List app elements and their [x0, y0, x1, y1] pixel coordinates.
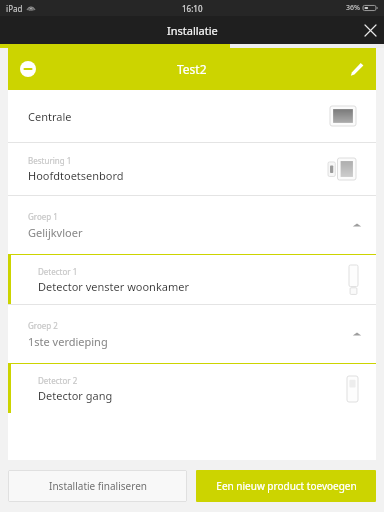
- staticText: iPad: [6, 3, 23, 14]
- button[interactable]: Close: [356, 16, 384, 44]
- button[interactable]: Besturing 1: [8, 143, 376, 195]
- button[interactable]: Centrale: [8, 90, 376, 142]
- staticText: 36%: [346, 3, 360, 13]
- staticText: Groep 2: [28, 320, 58, 331]
- button[interactable]: Een nieuw product toevoegen: [196, 470, 376, 502]
- staticText: Detector 2: [38, 375, 78, 386]
- staticText: Detector 1: [38, 266, 78, 277]
- staticText: Detector gang: [38, 388, 113, 403]
- staticText: 1ste verdieping: [28, 334, 108, 349]
- staticText: Installatie finaliseren: [49, 479, 147, 493]
- staticText: Besturing 1: [28, 155, 72, 166]
- staticText: Gelijkvloer: [28, 225, 83, 240]
- button[interactable]: Remove installation: [14, 55, 42, 83]
- button[interactable]: Groep 2: [8, 305, 376, 363]
- staticText: Groep 1: [28, 211, 58, 222]
- staticText: Hoofdtoetsenbord: [28, 168, 124, 183]
- button[interactable]: Detector 1: [8, 255, 376, 304]
- staticText: Een nieuw product toevoegen: [216, 479, 357, 493]
- staticText: Detector venster woonkamer: [38, 279, 189, 294]
- button[interactable]: Detector 2: [8, 364, 376, 413]
- button[interactable]: Edit name: [342, 55, 370, 83]
- staticText: 16:10: [182, 3, 203, 14]
- button[interactable]: Groep 1: [8, 196, 376, 254]
- staticText: Test2: [177, 61, 207, 77]
- staticText: Centrale: [28, 109, 72, 124]
- staticText: Installatie: [167, 23, 218, 38]
- button[interactable]: Installatie finaliseren: [8, 470, 187, 502]
